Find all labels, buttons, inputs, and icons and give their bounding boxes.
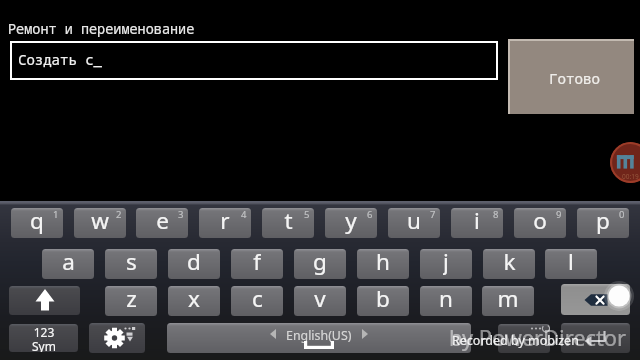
- staticText: z: [126, 286, 137, 313]
- button[interactable]: f: [231, 249, 283, 279]
- staticText: 2: [116, 208, 122, 221]
- staticText: p: [596, 208, 610, 235]
- staticText: f: [253, 249, 261, 276]
- staticText: t: [284, 208, 293, 235]
- button[interactable]: Готово: [510, 41, 634, 114]
- staticText: j: [443, 249, 449, 276]
- button[interactable]: u: [388, 208, 440, 238]
- staticText: m: [497, 286, 519, 313]
- staticText: g: [313, 249, 327, 276]
- staticText: r: [220, 208, 230, 235]
- button[interactable]: l: [545, 249, 597, 279]
- staticText: 1: [53, 208, 59, 221]
- button[interactable]: y: [325, 208, 377, 238]
- staticText: Ремонт и переименование: [8, 20, 195, 38]
- staticText: k: [503, 249, 516, 276]
- staticText: 4: [241, 208, 247, 221]
- button[interactable]: g: [294, 249, 346, 279]
- button[interactable]: t: [262, 208, 314, 238]
- button[interactable]: k: [483, 249, 535, 279]
- button[interactable]: c: [231, 286, 283, 316]
- button[interactable]: p: [577, 208, 629, 238]
- staticText: Готово: [549, 69, 601, 88]
- staticText: s: [126, 249, 137, 276]
- staticText: u: [407, 208, 421, 235]
- button[interactable]: Shift: [9, 286, 80, 315]
- button[interactable]: Emoji: [498, 324, 550, 353]
- button[interactable]: s: [105, 249, 157, 279]
- staticText: c: [252, 286, 263, 313]
- staticText: d: [187, 249, 201, 276]
- staticText: n: [439, 286, 453, 313]
- button[interactable]: j: [420, 249, 472, 279]
- button[interactable]: n: [420, 286, 472, 316]
- button[interactable]: Screen recorder: [610, 142, 640, 183]
- staticText: Recorded by mobizen: [452, 332, 579, 349]
- staticText: 123 Sym: [32, 324, 56, 352]
- staticText: English(US): [286, 327, 352, 344]
- button[interactable]: d: [168, 249, 220, 279]
- button[interactable]: Settings: [89, 323, 145, 353]
- staticText: 7: [430, 208, 436, 221]
- staticText: o: [533, 208, 547, 235]
- button[interactable]: English(US): [167, 323, 471, 353]
- staticText: x: [188, 286, 200, 313]
- staticText: by PowerDirector: [449, 323, 627, 353]
- button[interactable]: b: [357, 286, 409, 316]
- button[interactable]: Создать с_: [12, 43, 496, 78]
- staticText: 8: [493, 208, 499, 221]
- staticText: v: [314, 286, 326, 313]
- button[interactable]: r: [199, 208, 251, 238]
- button[interactable]: i: [451, 208, 503, 238]
- staticText: 6: [367, 208, 373, 221]
- button[interactable]: o: [514, 208, 566, 238]
- button[interactable]: Enter: [561, 323, 630, 353]
- staticText: Создать с_: [18, 50, 102, 69]
- staticText: q: [30, 208, 44, 235]
- button[interactable]: a: [42, 249, 94, 279]
- button[interactable]: m: [482, 286, 534, 316]
- button[interactable]: h: [357, 249, 409, 279]
- staticText: h: [376, 249, 390, 276]
- button[interactable]: v: [294, 286, 346, 316]
- button[interactable]: 123 Sym: [9, 324, 78, 352]
- staticText: 9: [556, 208, 562, 221]
- staticText: i: [474, 208, 480, 235]
- staticText: 3: [178, 208, 184, 221]
- staticText: 0: [619, 208, 625, 221]
- staticText: 5: [304, 208, 310, 221]
- button[interactable]: Backspace: [561, 284, 630, 315]
- staticText: 00:19: [622, 172, 639, 181]
- staticText: a: [62, 249, 75, 276]
- button[interactable]: w: [74, 208, 126, 238]
- staticText: e: [156, 208, 169, 235]
- button[interactable]: e: [136, 208, 188, 238]
- staticText: w: [91, 208, 109, 235]
- button[interactable]: z: [105, 286, 157, 316]
- staticText: l: [568, 249, 574, 276]
- staticText: y: [345, 208, 357, 235]
- staticText: b: [376, 286, 390, 313]
- button[interactable]: x: [168, 286, 220, 316]
- button[interactable]: q: [11, 208, 63, 238]
